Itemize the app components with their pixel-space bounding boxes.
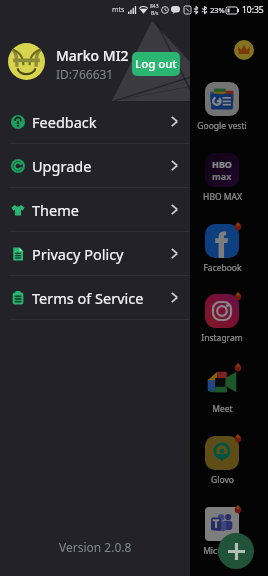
staticText: Google vesti — [197, 120, 247, 132]
staticText: Theme — [32, 200, 79, 220]
staticText: Upgrade — [32, 156, 92, 176]
button[interactable]: HBO — [190, 153, 254, 205]
staticText: 23% — [210, 5, 225, 15]
staticText: Terms of Service — [32, 288, 144, 308]
button[interactable]: Avatar — [8, 43, 45, 80]
staticText: Privacy Policy — [32, 244, 124, 264]
staticText: Log out — [135, 56, 177, 72]
staticText: Instagram — [201, 332, 243, 344]
button[interactable]: Instagram — [190, 294, 254, 346]
staticText: Microsoft — [203, 545, 241, 557]
staticText: B/s — [151, 10, 159, 17]
button[interactable]: Feedback — [0, 100, 268, 143]
staticText: 843 — [150, 3, 159, 10]
staticText: max — [212, 170, 232, 182]
button[interactable]: Microsoft — [190, 507, 254, 559]
button[interactable]: Privacy Policy — [0, 232, 268, 275]
staticText: HBO MAX — [203, 191, 242, 203]
staticText: Version 2.0.8 — [59, 539, 132, 555]
staticText: 10:35 — [242, 4, 264, 16]
staticText: Facebook — [203, 262, 242, 274]
button[interactable]: Theme — [0, 188, 268, 231]
staticText: mts — [112, 5, 125, 15]
staticText: ID:766631 — [56, 66, 114, 82]
staticText: Marko MI2 — [56, 46, 129, 65]
staticText: Meet — [212, 403, 233, 415]
button[interactable]: Google vesti — [190, 82, 254, 134]
staticText: Glovo — [211, 474, 234, 486]
button[interactable]: Meet — [190, 365, 254, 417]
staticText: Feedback — [32, 112, 97, 132]
button[interactable]: Facebook — [190, 224, 254, 276]
button[interactable]: Premium — [234, 40, 254, 60]
button[interactable]: Glovo — [190, 436, 254, 488]
button[interactable]: Add — [218, 533, 254, 569]
button[interactable]: Terms of Service — [0, 276, 268, 319]
button[interactable]: Log out — [132, 52, 180, 76]
button[interactable]: Upgrade — [0, 144, 268, 187]
staticText: HBO — [212, 158, 232, 170]
